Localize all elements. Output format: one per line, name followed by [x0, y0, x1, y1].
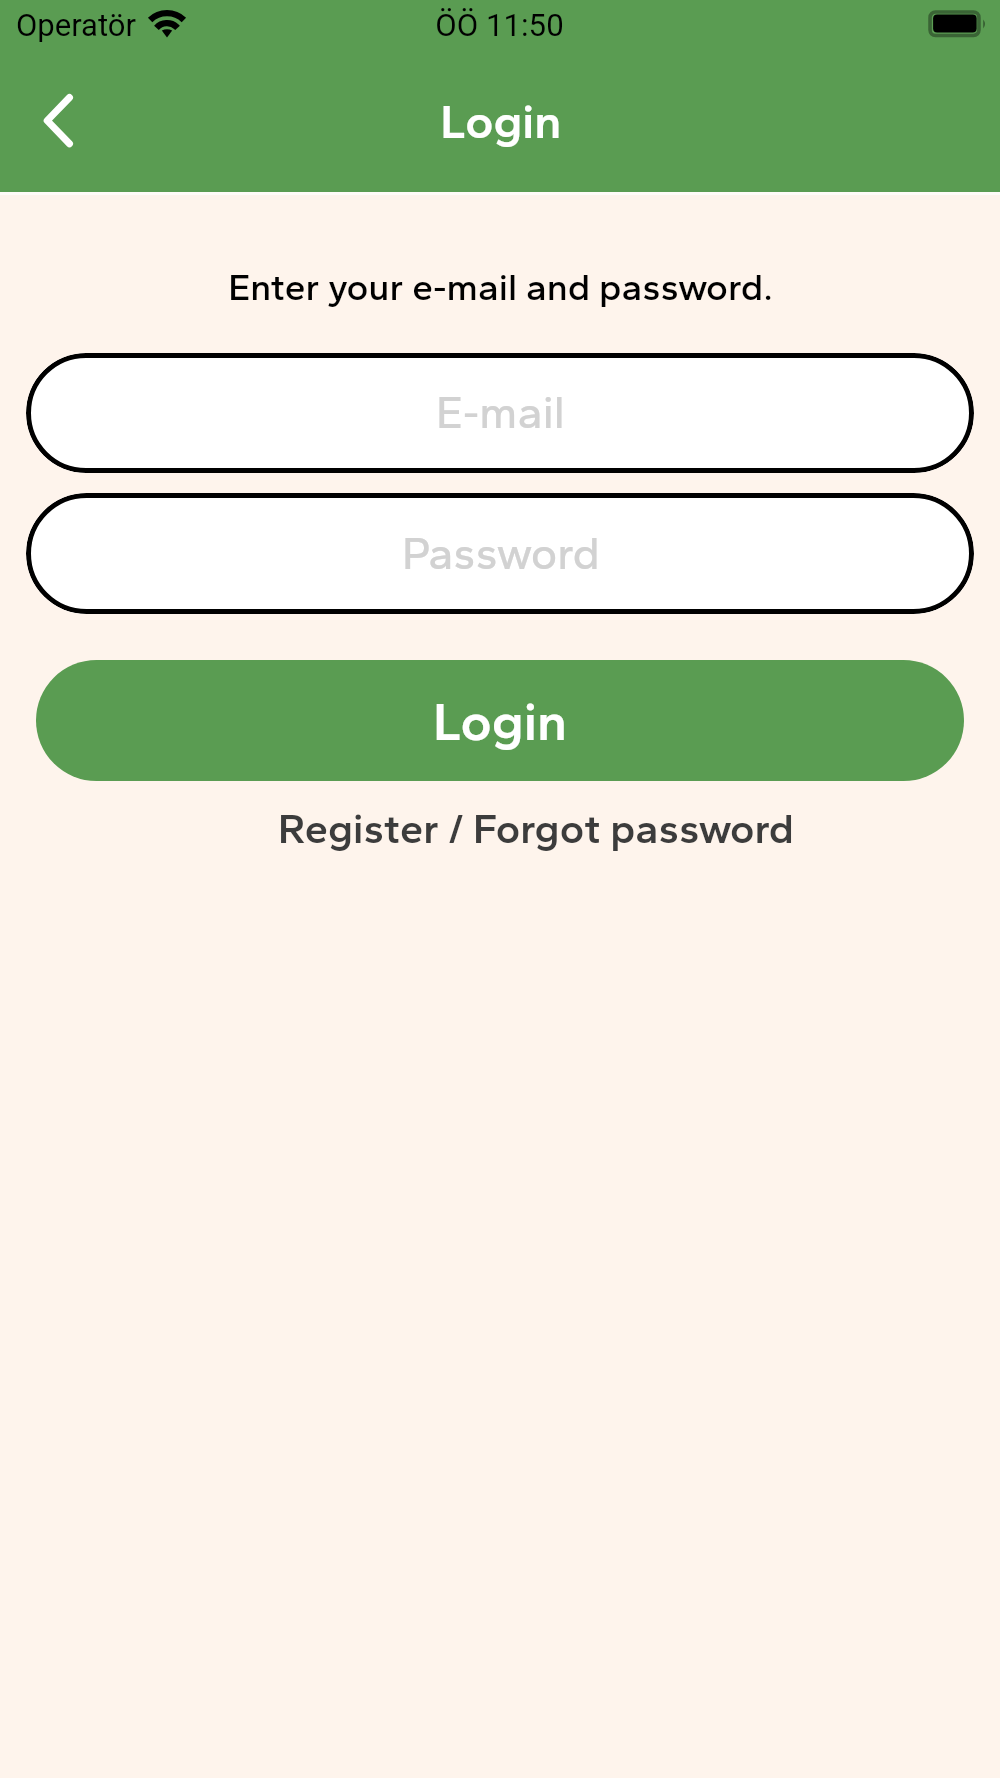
staticText: Register / Forgot password	[278, 804, 794, 854]
other: Wi-Fi signal	[148, 10, 186, 38]
staticText: Password	[402, 526, 600, 580]
staticText: ÖÖ 11:50	[435, 7, 564, 44]
button[interactable]: E-mail	[26, 353, 974, 473]
staticText: Enter your e-mail and password.	[228, 265, 773, 310]
button[interactable]: Back	[8, 70, 108, 170]
staticText: Operatör	[16, 7, 136, 43]
button[interactable]: Register / Forgot password	[253, 795, 818, 863]
other: Battery full	[928, 10, 990, 39]
staticText: Login	[440, 92, 562, 149]
button[interactable]: Login	[36, 660, 964, 781]
button[interactable]: Password	[26, 493, 974, 614]
staticText: E-mail	[436, 385, 565, 439]
staticText: Login	[433, 690, 568, 754]
